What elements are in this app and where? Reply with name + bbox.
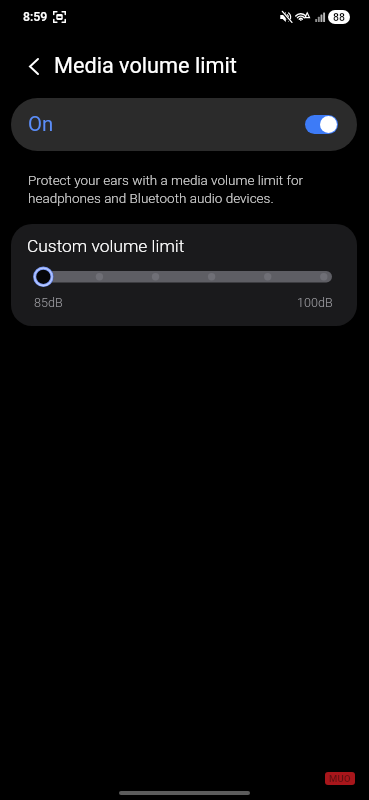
staticText: Media volume limit — [54, 53, 237, 78]
staticText: 100dB — [297, 295, 333, 310]
staticText: Custom volume limit — [27, 236, 185, 256]
staticText: Protect your ears with a media volume li… — [28, 172, 311, 206]
staticText: 8:59 — [23, 10, 48, 24]
button[interactable]: Navigate up — [18, 51, 50, 81]
staticText: 88 — [333, 11, 345, 23]
button[interactable]: On — [11, 98, 357, 151]
staticText: MUO — [329, 773, 351, 784]
staticText: On — [28, 112, 54, 136]
button[interactable]: Volume limit slider — [31, 264, 351, 290]
staticText: 85dB — [34, 295, 63, 310]
